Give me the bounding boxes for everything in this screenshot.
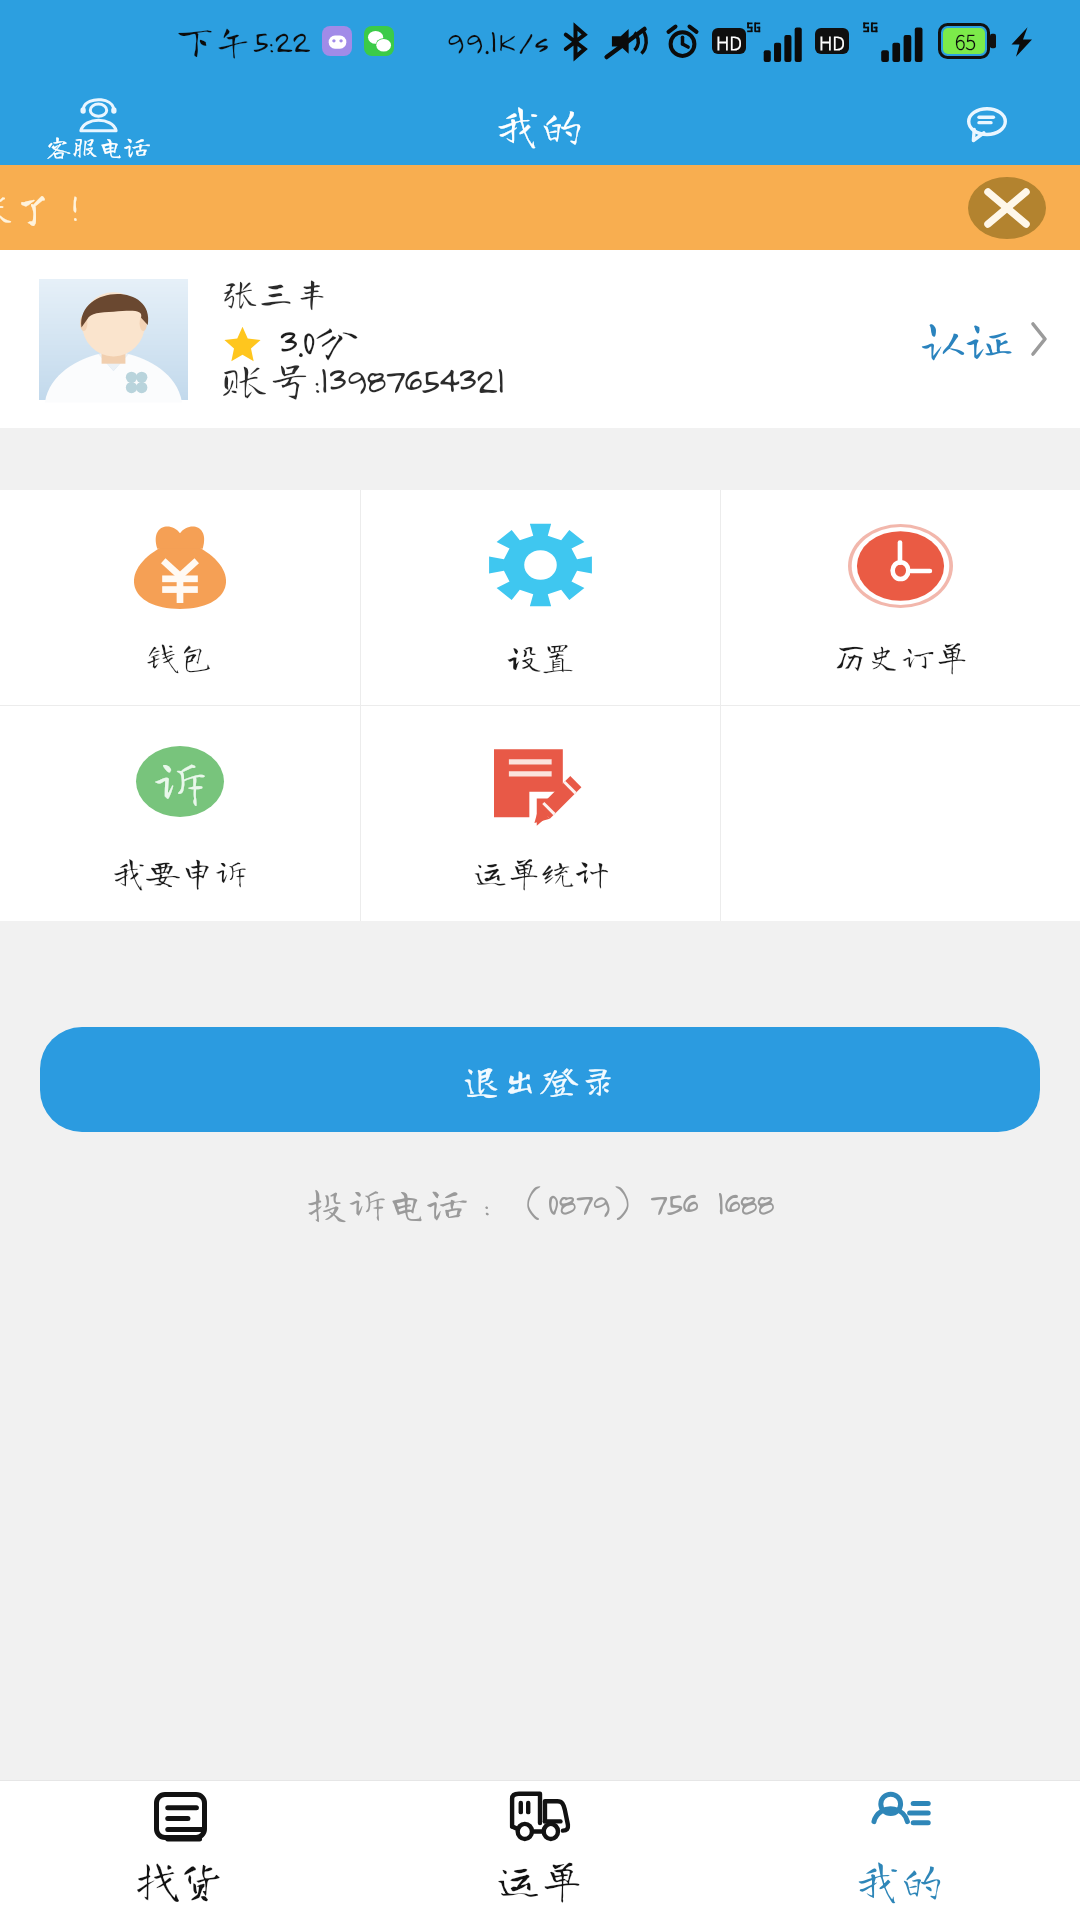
- button[interactable]: 退出登录: [40, 1027, 1040, 1132]
- button[interactable]: 客服电话: [44, 89, 153, 159]
- button[interactable]: Messages: [953, 90, 1021, 158]
- staticText: 下午5:22: [176, 22, 310, 60]
- staticText: 诉: [152, 753, 208, 809]
- staticText: 账号:13987654321: [222, 356, 504, 401]
- staticText: HD: [819, 28, 845, 54]
- staticText: HD: [716, 28, 742, 54]
- staticText: 99.1K/s: [446, 22, 550, 60]
- staticText: 您的货款已经到账了！: [0, 187, 97, 229]
- staticText: 设置: [507, 639, 575, 673]
- button[interactable]: 历史订单: [721, 490, 1080, 705]
- button[interactable]: 钱包: [0, 490, 360, 705]
- button[interactable]: 运单: [360, 1781, 720, 1920]
- staticText: 找货: [136, 1857, 224, 1901]
- button[interactable]: 诉: [0, 706, 360, 921]
- staticText: 张三丰: [222, 274, 331, 310]
- staticText: 客服电话: [46, 133, 151, 159]
- staticText: 运单统计: [473, 855, 609, 889]
- button[interactable]: 您的货款已经到账了！: [0, 165, 1080, 250]
- button[interactable]: 运单统计: [361, 706, 720, 921]
- staticText: 我的: [496, 102, 584, 146]
- staticText: 认证: [920, 316, 1012, 362]
- button[interactable]: 张三丰: [0, 250, 1080, 428]
- staticText: 投诉电话：（0879）756 1688: [307, 1183, 773, 1223]
- staticText: 运单: [496, 1857, 584, 1901]
- staticText: 65: [955, 27, 976, 56]
- staticText: 退出登录: [462, 1061, 619, 1099]
- button[interactable]: 找货: [0, 1781, 360, 1920]
- button[interactable]: 我的: [720, 1781, 1080, 1920]
- button[interactable]: 设置: [361, 490, 720, 705]
- staticText: 钱包: [146, 639, 214, 673]
- staticText: 3.0分: [278, 318, 360, 364]
- button[interactable]: Close: [968, 177, 1046, 239]
- staticText: 历史订单: [833, 639, 969, 673]
- staticText: 我要申诉: [112, 855, 248, 889]
- staticText: 我的: [856, 1857, 944, 1901]
